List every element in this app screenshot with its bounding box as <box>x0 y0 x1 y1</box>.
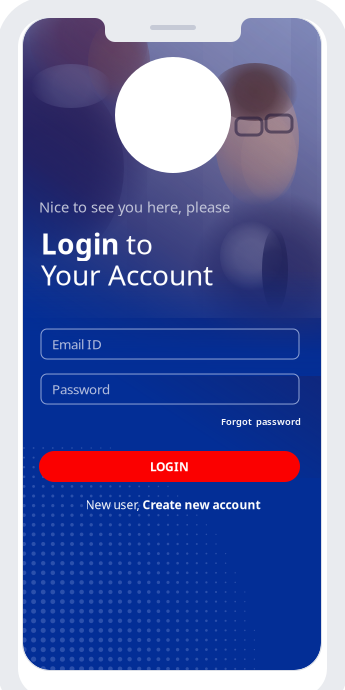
staticText: LOGIN <box>150 458 189 474</box>
staticText: Forgot password <box>221 415 301 428</box>
staticText: Your Account <box>41 256 213 293</box>
button[interactable]: Forgot password <box>43 415 301 428</box>
staticText: Password <box>52 380 110 398</box>
button[interactable]: Email ID <box>41 329 299 359</box>
staticText: New user, Create new account <box>85 496 260 512</box>
button[interactable]: New user, Create new account <box>44 498 302 511</box>
staticText: Email ID <box>52 335 102 353</box>
button[interactable]: Password <box>41 374 299 404</box>
staticText: Login to <box>41 225 153 262</box>
button[interactable]: LOGIN <box>39 451 300 482</box>
staticText: Nice to see you here, please <box>39 197 230 216</box>
